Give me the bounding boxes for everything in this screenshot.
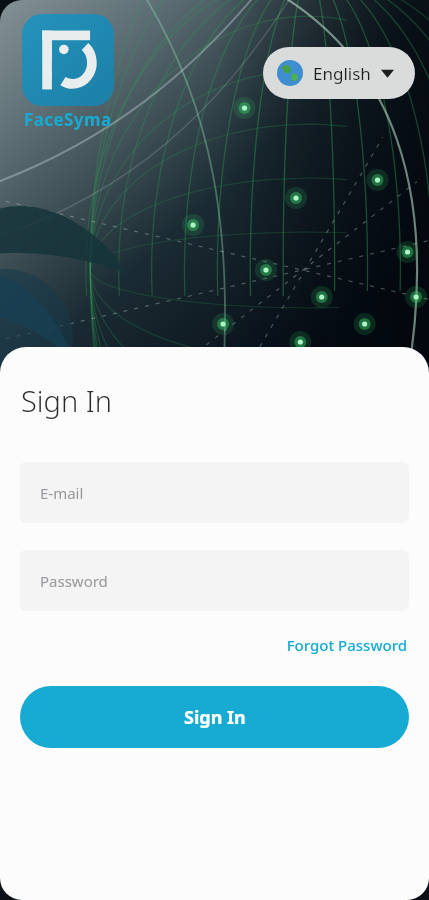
staticText: Password	[40, 571, 108, 591]
button[interactable]: E-mail	[20, 462, 409, 523]
staticText: E-mail	[40, 483, 84, 503]
staticText: Sign In	[21, 381, 113, 420]
button[interactable]: Forgot Password	[284, 629, 409, 661]
staticText: Forgot Password	[286, 635, 407, 655]
button[interactable]: English	[263, 47, 415, 99]
staticText: English	[313, 62, 371, 85]
button[interactable]: Password	[20, 550, 409, 611]
staticText: FaceSyma	[24, 108, 112, 131]
button[interactable]: Sign In	[20, 686, 409, 748]
staticText: Sign In	[184, 705, 246, 730]
